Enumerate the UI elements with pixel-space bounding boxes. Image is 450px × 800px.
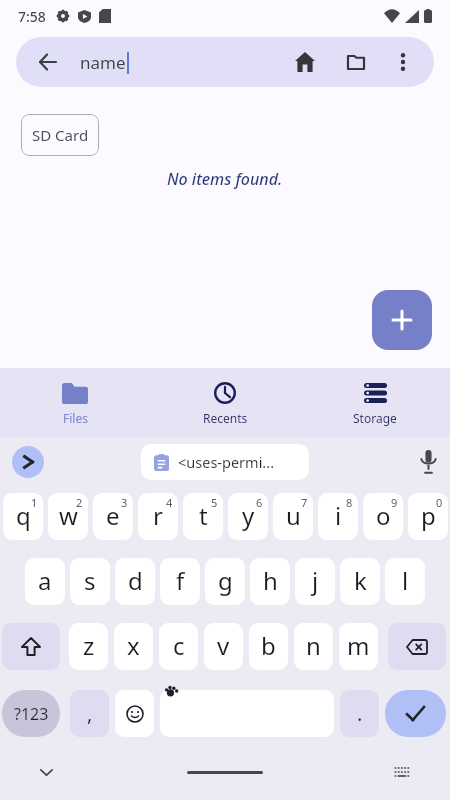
button[interactable]: g xyxy=(205,558,245,605)
staticText: , xyxy=(87,700,93,727)
staticText: o xyxy=(376,499,391,532)
staticText: 3 xyxy=(121,495,128,510)
staticText: 1 xyxy=(31,495,38,510)
staticText: 0 xyxy=(436,495,443,510)
staticText: 7:58 xyxy=(18,7,46,26)
button[interactable]: m xyxy=(339,623,378,670)
button[interactable]: SD Card xyxy=(21,114,99,156)
staticText: ?123 xyxy=(14,703,49,725)
button[interactable]: z xyxy=(69,623,108,670)
button[interactable]: . xyxy=(340,690,379,737)
button[interactable]: t xyxy=(183,493,223,540)
button[interactable]: o xyxy=(363,493,403,540)
staticText: e xyxy=(106,499,120,532)
button[interactable]: e xyxy=(93,493,133,540)
button[interactable] xyxy=(388,623,446,670)
button[interactable]: r xyxy=(138,493,178,540)
staticText: w xyxy=(59,499,78,532)
button[interactable]: Files xyxy=(0,368,150,437)
staticText: 9 xyxy=(391,495,398,510)
staticText: j xyxy=(312,564,319,597)
button[interactable]: k xyxy=(340,558,380,605)
staticText: 6 xyxy=(256,495,263,510)
button[interactable]: x xyxy=(114,623,153,670)
staticText: i xyxy=(335,499,342,532)
button[interactable] xyxy=(383,38,423,86)
staticText: <uses-permi... xyxy=(178,452,275,472)
staticText: v xyxy=(217,629,230,662)
button[interactable]: p xyxy=(408,493,448,540)
staticText: Recents xyxy=(203,410,248,426)
button[interactable]: y xyxy=(228,493,268,540)
button[interactable]: <uses-permi... xyxy=(141,444,309,480)
button[interactable]: d xyxy=(115,558,155,605)
staticText: k xyxy=(354,564,367,597)
staticText: h xyxy=(263,564,278,597)
staticText: No items found. xyxy=(167,168,283,190)
button[interactable]: ?123 xyxy=(2,690,60,737)
staticText: q xyxy=(16,499,31,532)
staticText: c xyxy=(173,629,185,662)
button[interactable]: j xyxy=(295,558,335,605)
staticText: 2 xyxy=(76,495,83,510)
button[interactable] xyxy=(12,446,44,478)
staticText: name xyxy=(80,51,126,74)
button[interactable] xyxy=(336,38,376,86)
button[interactable]: i xyxy=(318,493,358,540)
button[interactable]: h xyxy=(250,558,290,605)
staticText: . xyxy=(357,700,363,727)
staticText: x xyxy=(127,629,140,662)
button[interactable] xyxy=(385,690,446,737)
staticText: p xyxy=(421,499,436,532)
staticText: f xyxy=(176,564,185,597)
staticText: t xyxy=(199,499,208,532)
button[interactable] xyxy=(160,690,334,737)
button[interactable]: n xyxy=(294,623,333,670)
button[interactable]: f xyxy=(160,558,200,605)
staticText: z xyxy=(83,629,95,662)
staticText: d xyxy=(128,564,143,597)
staticText: Storage xyxy=(353,410,397,426)
staticText: SD Card xyxy=(32,125,89,145)
button[interactable]: b xyxy=(249,623,288,670)
button[interactable] xyxy=(394,766,410,778)
button[interactable]: q xyxy=(3,493,43,540)
button[interactable]: v xyxy=(204,623,243,670)
staticText: 8 xyxy=(346,495,353,510)
staticText: u xyxy=(286,499,301,532)
staticText: s xyxy=(84,564,96,597)
button[interactable]: name xyxy=(16,37,434,87)
button[interactable]: c xyxy=(159,623,198,670)
staticText: 4 xyxy=(166,495,173,510)
staticText: n xyxy=(306,629,321,662)
button[interactable] xyxy=(30,38,66,86)
staticText: 5 xyxy=(211,495,218,510)
button[interactable]: Recents xyxy=(150,368,300,437)
staticText: r xyxy=(153,499,163,532)
button[interactable] xyxy=(2,623,60,670)
button[interactable] xyxy=(372,290,432,350)
staticText: Files xyxy=(63,410,88,426)
button[interactable]: Storage xyxy=(300,368,450,437)
staticText: b xyxy=(261,629,276,662)
button[interactable] xyxy=(115,690,154,737)
staticText: l xyxy=(402,564,409,597)
staticText: g xyxy=(218,564,233,597)
button[interactable] xyxy=(32,762,60,782)
button[interactable]: w xyxy=(48,493,88,540)
button[interactable] xyxy=(285,38,325,86)
button[interactable] xyxy=(414,448,442,476)
staticText: 7 xyxy=(301,495,308,510)
button[interactable]: u xyxy=(273,493,313,540)
button[interactable]: a xyxy=(25,558,65,605)
button[interactable]: l xyxy=(385,558,425,605)
button[interactable]: s xyxy=(70,558,110,605)
staticText: a xyxy=(38,564,52,597)
staticText: y xyxy=(242,499,255,532)
button[interactable]: , xyxy=(70,690,109,737)
staticText: m xyxy=(347,629,370,662)
